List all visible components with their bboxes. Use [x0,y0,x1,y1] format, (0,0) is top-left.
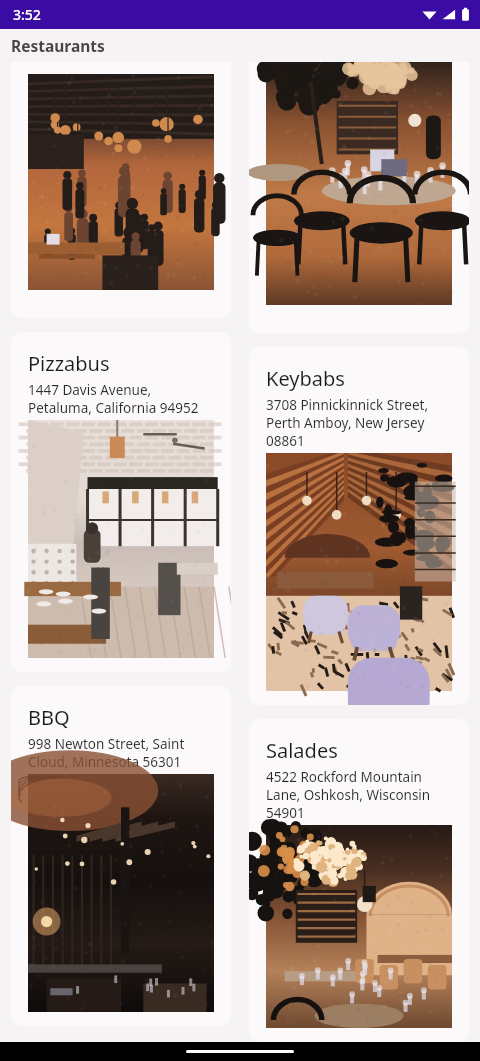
staticText: Salades [266,737,338,764]
staticText: 3708 Pinnickinnick Street, Perth Amboy, … [266,396,429,450]
button[interactable] [11,62,231,318]
staticText: 998 Newton Street, Saint Cloud, Minnesot… [28,735,185,771]
button[interactable] [249,62,469,333]
staticText: 1447 Davis Avenue, Petaluma, California … [28,381,199,417]
staticText: Keybabs [266,365,345,392]
staticText: 3:52 [13,5,41,24]
staticText: Pizzabus [28,350,110,377]
button[interactable]: Pizzabus [11,332,231,672]
staticText: BBQ [28,704,70,731]
staticText: Restaurants [11,35,105,56]
button[interactable]: Salades [249,719,469,1042]
button[interactable]: Keybabs [249,347,469,705]
staticText: 4522 Rockford Mountain Lane, Oshkosh, Wi… [266,768,431,822]
button[interactable]: BBQ [11,686,231,1026]
other: Home gesture [186,1050,294,1053]
